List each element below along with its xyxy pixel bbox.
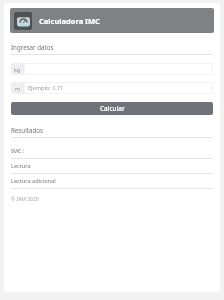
staticText: m xyxy=(15,85,21,92)
staticText: Ingresar datos xyxy=(11,43,54,51)
staticText: Calcular xyxy=(100,104,125,113)
button[interactable]: IMC : xyxy=(11,144,213,159)
button[interactable]: Balanza xyxy=(10,8,214,33)
staticText: Lectura xyxy=(11,162,31,170)
staticText: kg xyxy=(14,66,21,73)
staticText: IMC : xyxy=(11,147,25,155)
button[interactable]: Calcular xyxy=(11,102,213,115)
staticText: Calculadora IMC xyxy=(39,16,100,26)
button[interactable]: Lectura xyxy=(11,159,213,174)
button[interactable]: m xyxy=(11,82,213,94)
other: Balanza xyxy=(14,12,32,30)
staticText: Ejemplo: 1.71 xyxy=(28,84,64,92)
button[interactable]: kg xyxy=(11,63,213,75)
staticText: Resultados xyxy=(11,126,43,134)
staticText: Lectura adicional xyxy=(11,177,56,185)
staticText: © IAM 2020 xyxy=(11,196,39,203)
button[interactable]: Lectura adicional xyxy=(11,174,213,189)
